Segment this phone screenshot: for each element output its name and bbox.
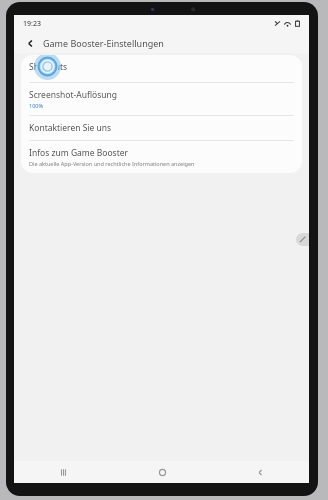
- staticText: 19:23: [23, 19, 41, 29]
- button[interactable]: Übersicht: [14, 461, 113, 483]
- button[interactable]: Startbildschirm: [113, 461, 211, 483]
- staticText: Shortcuts: [29, 61, 68, 73]
- button[interactable]: Zurück: [22, 35, 38, 51]
- button[interactable]: Shortcuts: [21, 55, 302, 82]
- staticText: Screenshot-Auflösung: [29, 89, 117, 101]
- button[interactable]: Infos zum Game Booster: [21, 141, 302, 173]
- staticText: 100%: [29, 102, 44, 109]
- staticText: Infos zum Game Booster: [29, 147, 129, 159]
- staticText: Game Booster-Einstellungen: [43, 37, 164, 49]
- staticText: Kontaktieren Sie uns: [29, 122, 112, 134]
- button[interactable]: Zurück: [211, 461, 309, 483]
- button[interactable]: Edge panel handle: [296, 233, 309, 246]
- button[interactable]: Kontaktieren Sie uns: [21, 116, 302, 140]
- staticText: Die aktuelle App-Version und rechtliche …: [29, 160, 195, 167]
- button[interactable]: Screenshot-Auflösung: [21, 83, 302, 115]
